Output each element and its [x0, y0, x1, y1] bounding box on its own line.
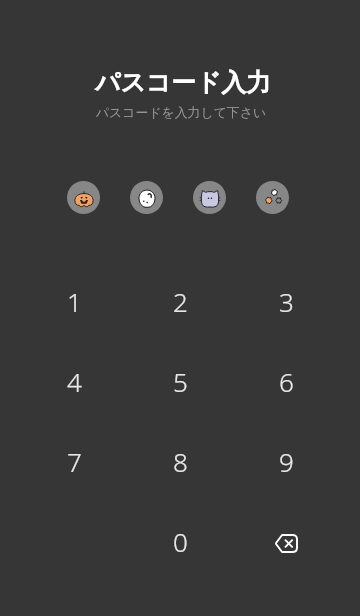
button[interactable]: 4 — [21, 341, 127, 421]
button[interactable]: Passcode character 1 — [67, 181, 100, 214]
button[interactable]: Passcode character 2 — [130, 181, 163, 214]
staticText: 1 — [67, 284, 82, 319]
staticText: 7 — [67, 444, 82, 479]
button[interactable]: 1 — [21, 261, 127, 341]
staticText: 5 — [173, 364, 188, 399]
staticText: 9 — [279, 444, 294, 479]
staticText: パスコードを入力して下さい — [1, 105, 360, 121]
button[interactable]: 7 — [21, 421, 127, 501]
button[interactable]: Delete — [233, 501, 339, 581]
button[interactable]: 9 — [233, 421, 339, 501]
staticText: 6 — [279, 364, 294, 399]
staticText: パスコード入力 — [3, 67, 360, 98]
staticText: 2 — [173, 284, 188, 319]
button[interactable]: 0 — [127, 501, 233, 581]
button[interactable]: Passcode character 4 — [256, 181, 289, 214]
staticText: 0 — [173, 524, 188, 559]
staticText: 8 — [173, 444, 188, 479]
button[interactable]: 8 — [127, 421, 233, 501]
staticText: 4 — [67, 364, 82, 399]
button[interactable]: 3 — [233, 261, 339, 341]
button[interactable]: 2 — [127, 261, 233, 341]
button[interactable]: Passcode character 3 — [193, 181, 226, 214]
staticText: 3 — [279, 284, 294, 319]
button[interactable]: 5 — [127, 341, 233, 421]
button[interactable]: 6 — [233, 341, 339, 421]
